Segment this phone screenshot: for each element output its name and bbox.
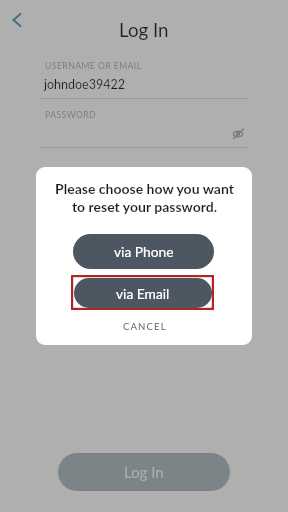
staticText: PASSWORD <box>45 110 97 120</box>
staticText: USERNAME OR EMAIL <box>45 61 142 71</box>
button[interactable]: Show password <box>228 124 248 144</box>
button[interactable]: via Email <box>74 278 212 308</box>
staticText: via Phone <box>114 243 174 260</box>
staticText: Please choose how you want to reset your… <box>55 180 234 215</box>
staticText: Log In <box>119 19 169 41</box>
staticText: via Email <box>116 285 170 302</box>
button[interactable]: via Phone <box>73 234 214 269</box>
button[interactable]: CANCEL <box>109 316 181 338</box>
staticText: CANCEL <box>123 321 167 333</box>
staticText: Log In <box>124 463 164 481</box>
staticText: johndoe39422 <box>44 77 125 92</box>
button[interactable]: Back <box>3 6 31 34</box>
button[interactable]: Log In <box>58 453 230 491</box>
